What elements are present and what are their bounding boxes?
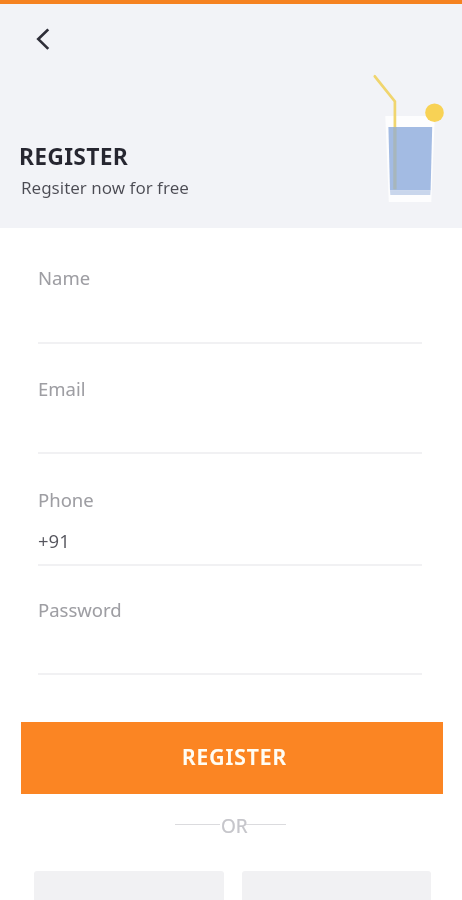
button[interactable]: REGISTER [21,722,443,794]
staticText: REGISTER [182,743,287,772]
staticText: OR [221,813,248,839]
staticText: +91 [38,528,70,553]
staticText: Regsiter now for free [21,176,189,199]
staticText: Password [38,597,122,622]
staticText: REGISTER [19,140,129,171]
staticText: Name [38,265,91,290]
staticText: Email [38,376,86,401]
staticText: Phone [38,487,94,512]
button[interactable]: Back [21,18,65,62]
